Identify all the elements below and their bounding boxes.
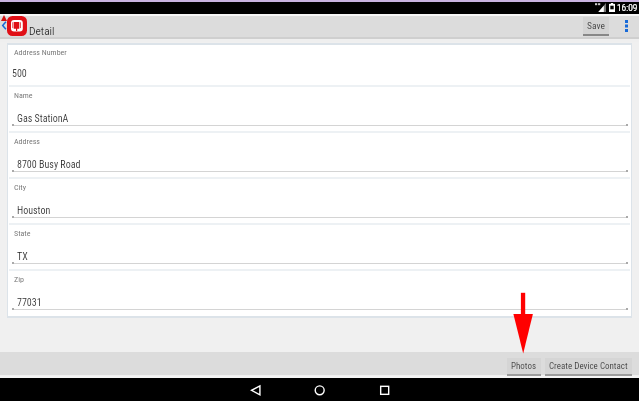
button[interactable]: Save bbox=[583, 17, 609, 34]
button[interactable]: Navigate up bbox=[1, 21, 7, 30]
button[interactable]: Create Device Contact bbox=[545, 358, 632, 374]
staticText: TX bbox=[17, 251, 28, 263]
staticText: Create Device Contact bbox=[549, 361, 628, 372]
staticText: Detail bbox=[29, 26, 55, 38]
staticText: 77031 bbox=[17, 297, 42, 309]
button[interactable]: Address bbox=[7, 132, 632, 178]
button[interactable]: App icon bbox=[7, 16, 27, 36]
button[interactable]: Recent apps bbox=[377, 382, 393, 398]
staticText: 500 bbox=[12, 68, 27, 80]
button[interactable]: State bbox=[7, 224, 632, 270]
staticText: State bbox=[14, 229, 31, 238]
button[interactable]: Home bbox=[312, 382, 328, 398]
button[interactable]: Back bbox=[248, 382, 264, 398]
staticText: Name bbox=[14, 91, 33, 100]
button[interactable]: City bbox=[7, 178, 632, 224]
staticText: Save bbox=[587, 20, 605, 31]
button[interactable]: Photos bbox=[507, 358, 541, 374]
button[interactable]: More options bbox=[619, 18, 635, 33]
staticText: Address bbox=[14, 137, 40, 146]
staticText: 16:09 bbox=[617, 3, 638, 13]
staticText: Address Number bbox=[14, 48, 67, 57]
staticText: Gas StationA bbox=[17, 113, 69, 125]
staticText: Photos bbox=[511, 361, 537, 372]
staticText: Zip bbox=[14, 275, 24, 284]
staticText: 8700 Busy Road bbox=[17, 159, 81, 171]
staticText: Houston bbox=[17, 205, 51, 217]
button[interactable]: Zip bbox=[7, 270, 632, 317]
button[interactable]: Name bbox=[7, 86, 632, 132]
staticText: City bbox=[14, 183, 27, 192]
button[interactable]: Address Number bbox=[7, 43, 632, 86]
